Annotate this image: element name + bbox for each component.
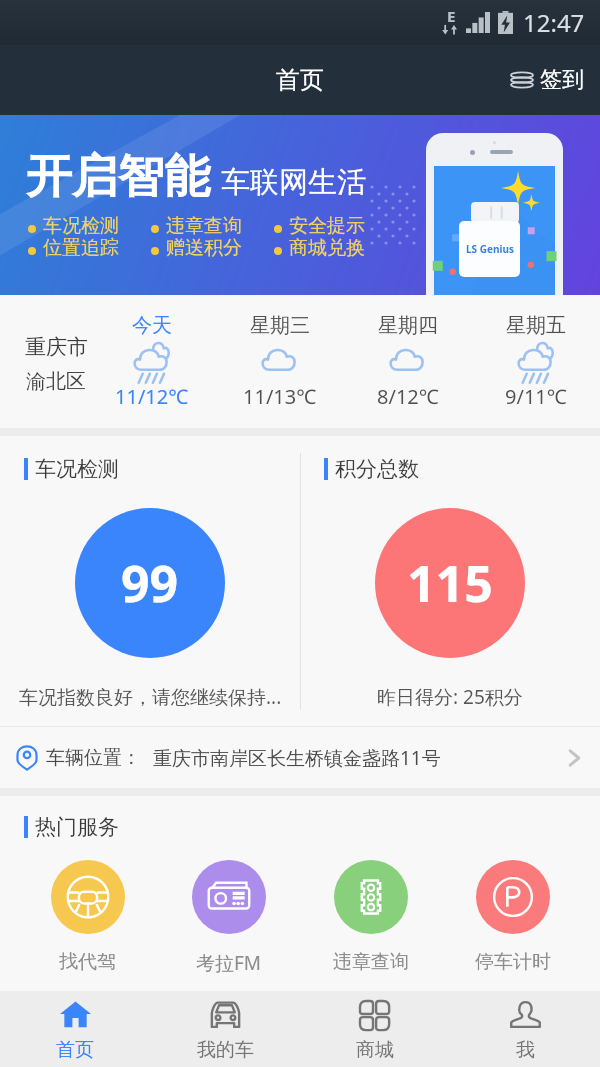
- staticText: 今天: [132, 313, 172, 338]
- button[interactable]: 停车计时: [442, 860, 584, 974]
- button[interactable]: 签到: [499, 66, 600, 94]
- staticText: 星期三: [250, 313, 310, 338]
- staticText: 开启智能: [26, 148, 210, 206]
- button[interactable]: 商城: [300, 991, 450, 1067]
- staticText: 车况检测: [35, 456, 119, 482]
- button[interactable]: 我的车: [150, 991, 300, 1067]
- staticText: 11/12℃: [115, 383, 189, 410]
- staticText: 99: [121, 549, 179, 617]
- staticText: 违章查询: [166, 214, 242, 238]
- staticText: 车况指数良好，请您继续保持...: [19, 684, 282, 710]
- button[interactable]: 车况检测: [0, 436, 300, 726]
- staticText: 星期四: [378, 313, 438, 338]
- staticText: 商城兑换: [289, 236, 365, 260]
- staticText: 我: [516, 1038, 535, 1062]
- staticText: 昨日得分: 25积分: [377, 684, 523, 710]
- staticText: 车况检测: [43, 214, 119, 238]
- staticText: 渝北区: [26, 369, 86, 394]
- staticText: 违章查询: [333, 950, 409, 974]
- staticText: LS Genius: [466, 242, 514, 256]
- staticText: 积分总数: [335, 456, 419, 482]
- staticText: 我的车: [197, 1038, 254, 1062]
- staticText: 重庆市南岸区长生桥镇金盏路11号: [153, 745, 441, 771]
- staticText: E: [447, 6, 456, 26]
- staticText: 车联网生活: [221, 164, 366, 201]
- staticText: 12:47: [523, 6, 585, 39]
- button[interactable]: 车辆位置：: [0, 727, 600, 788]
- button[interactable]: 我: [450, 991, 600, 1067]
- staticText: 11/13℃: [243, 383, 317, 410]
- staticText: 115: [407, 549, 493, 617]
- staticText: 签到: [540, 66, 584, 94]
- staticText: 星期五: [506, 313, 566, 338]
- staticText: 热门服务: [35, 814, 119, 840]
- staticText: 安全提示: [289, 214, 365, 238]
- button[interactable]: 首页: [0, 991, 150, 1067]
- staticText: 考拉FM: [196, 950, 262, 976]
- staticText: 赠送积分: [166, 236, 242, 260]
- button[interactable]: 积分总数: [300, 436, 600, 726]
- staticText: 商城: [356, 1038, 394, 1062]
- staticText: 8/12℃: [377, 383, 439, 410]
- button[interactable]: 考拉FM: [158, 860, 300, 976]
- staticText: 重庆市: [25, 334, 88, 360]
- staticText: 位置追踪: [43, 236, 119, 260]
- staticText: 找代驾: [59, 950, 116, 974]
- staticText: 停车计时: [475, 950, 551, 974]
- button[interactable]: 找代驾: [17, 860, 158, 974]
- staticText: 9/11℃: [505, 383, 567, 410]
- staticText: 首页: [56, 1038, 94, 1062]
- staticText: 车辆位置：: [46, 746, 141, 770]
- button[interactable]: 违章查询: [300, 860, 442, 974]
- staticText: 首页: [276, 65, 324, 95]
